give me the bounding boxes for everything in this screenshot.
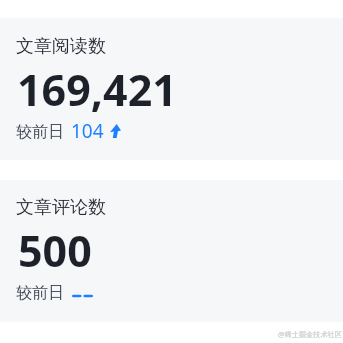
other: 较前日上升	[110, 124, 121, 138]
staticText: 文章评论数	[16, 196, 106, 219]
staticText: 169,421	[17, 60, 177, 119]
staticText: @稀土掘金技术社区	[278, 329, 342, 339]
staticText: 500	[18, 221, 92, 280]
staticText: 104	[71, 118, 104, 144]
button[interactable]: 文章评论数	[0, 180, 343, 322]
button[interactable]: 文章阅读数	[0, 18, 343, 160]
other: 较前日无变化	[72, 289, 93, 303]
staticText: 文章阅读数	[16, 35, 106, 58]
staticText: 较前日	[16, 122, 64, 142]
staticText: 较前日	[16, 283, 64, 303]
